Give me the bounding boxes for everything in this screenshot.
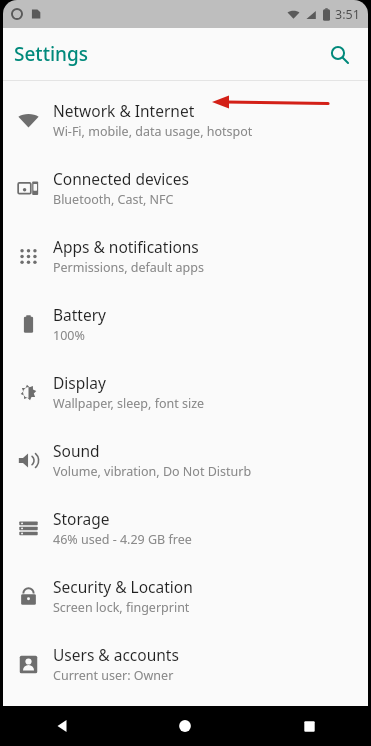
staticText: Apps & notifications <box>53 236 199 257</box>
staticText: Security & Location <box>53 576 193 597</box>
button[interactable]: Battery <box>3 290 368 358</box>
staticText: Battery <box>53 304 107 325</box>
button[interactable]: Network & Internet <box>3 86 368 154</box>
button[interactable]: Display <box>3 358 368 426</box>
button[interactable]: Storage <box>3 494 368 562</box>
staticText: 3:51 <box>335 6 360 23</box>
staticText: Wi-Fi, mobile, data usage, hotspot <box>53 123 253 140</box>
button[interactable]: Recent apps <box>247 706 371 746</box>
staticText: Wallpaper, sleep, font size <box>53 395 205 412</box>
button[interactable]: Security & Location <box>3 562 368 630</box>
staticText: Volume, vibration, Do Not Disturb <box>53 463 252 480</box>
staticText: 46% used - 4.29 GB free <box>53 531 192 548</box>
staticText: Screen lock, fingerprint <box>53 599 190 616</box>
button[interactable]: Search <box>322 37 356 71</box>
staticText: Network & Internet <box>53 100 195 121</box>
button[interactable]: Home <box>123 706 247 746</box>
staticText: Bluetooth, Cast, NFC <box>53 191 174 208</box>
staticText: Users & accounts <box>53 644 179 665</box>
staticText: Settings <box>14 41 88 67</box>
staticText: Permissions, default apps <box>53 259 204 276</box>
button[interactable]: Users & accounts <box>3 630 368 698</box>
staticText: Display <box>53 372 106 393</box>
button[interactable]: Back <box>0 706 123 746</box>
staticText: 100% <box>53 327 85 344</box>
button[interactable]: Connected devices <box>3 154 368 222</box>
button[interactable]: Sound <box>3 426 368 494</box>
staticText: Current user: Owner <box>53 667 174 684</box>
button[interactable]: Apps & notifications <box>3 222 368 290</box>
staticText: Sound <box>53 440 100 461</box>
staticText: Connected devices <box>53 168 189 189</box>
staticText: Storage <box>53 508 110 529</box>
